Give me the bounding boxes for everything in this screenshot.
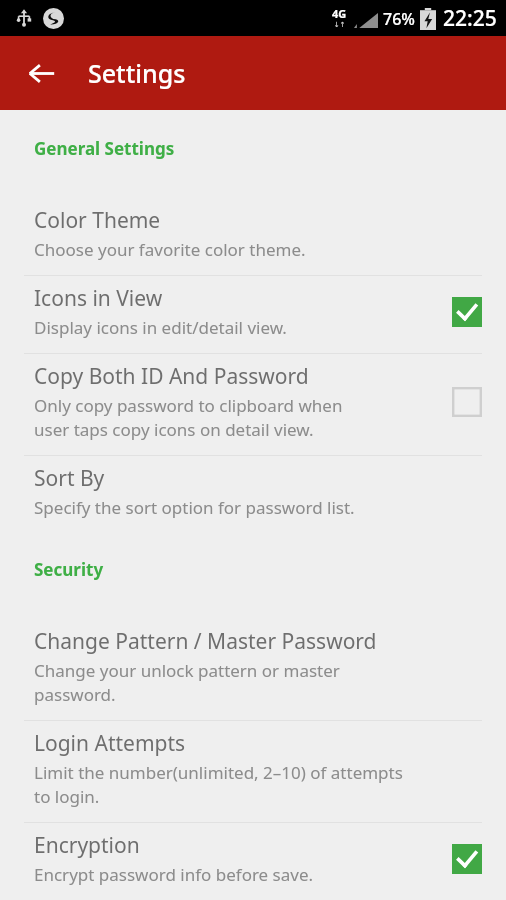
staticText: ↓↑ bbox=[334, 21, 346, 29]
button[interactable]: Login Attempts bbox=[0, 721, 506, 822]
staticText: 22:25 bbox=[443, 4, 497, 33]
button[interactable]: Color Theme bbox=[0, 198, 506, 275]
staticText: Encryption bbox=[34, 831, 140, 860]
button[interactable]: Encryption bbox=[0, 823, 506, 900]
staticText: Security bbox=[34, 558, 104, 581]
staticText: Settings bbox=[88, 56, 186, 90]
staticText: General Settings bbox=[34, 137, 175, 160]
staticText: Copy Both ID And Password bbox=[34, 362, 309, 391]
button[interactable]: Icons in View bbox=[0, 276, 506, 353]
button[interactable]: Sort By bbox=[0, 456, 506, 533]
button[interactable]: Back bbox=[16, 48, 66, 98]
button[interactable]: Enabled checkbox bbox=[452, 297, 482, 327]
button[interactable]: Disabled checkbox bbox=[452, 387, 482, 417]
staticText: Choose your favorite color theme. bbox=[34, 238, 306, 261]
button[interactable]: Copy Both ID And Password bbox=[0, 354, 506, 455]
staticText: Encrypt password info before save. bbox=[34, 863, 314, 886]
button[interactable]: Change Pattern / Master Password bbox=[0, 619, 506, 720]
staticText: Limit the number(unlimited, 2–10) of att… bbox=[34, 761, 403, 808]
staticText: Icons in View bbox=[34, 284, 163, 313]
staticText: Login Attempts bbox=[34, 729, 186, 758]
staticText: Change Pattern / Master Password bbox=[34, 627, 377, 656]
other: App notification bbox=[43, 8, 64, 29]
staticText: Display icons in edit/detail view. bbox=[34, 316, 287, 339]
staticText: 4G bbox=[332, 6, 347, 21]
other: USB connected bbox=[15, 9, 33, 27]
button[interactable]: Enabled checkbox bbox=[452, 844, 482, 874]
staticText: Change your unlock pattern or master pas… bbox=[34, 659, 340, 706]
staticText: 76% bbox=[383, 8, 415, 30]
staticText: Only copy password to clipboard when use… bbox=[34, 394, 343, 441]
staticText: Specify the sort option for password lis… bbox=[34, 496, 355, 519]
staticText: Color Theme bbox=[34, 206, 161, 235]
staticText: Sort By bbox=[34, 464, 105, 493]
